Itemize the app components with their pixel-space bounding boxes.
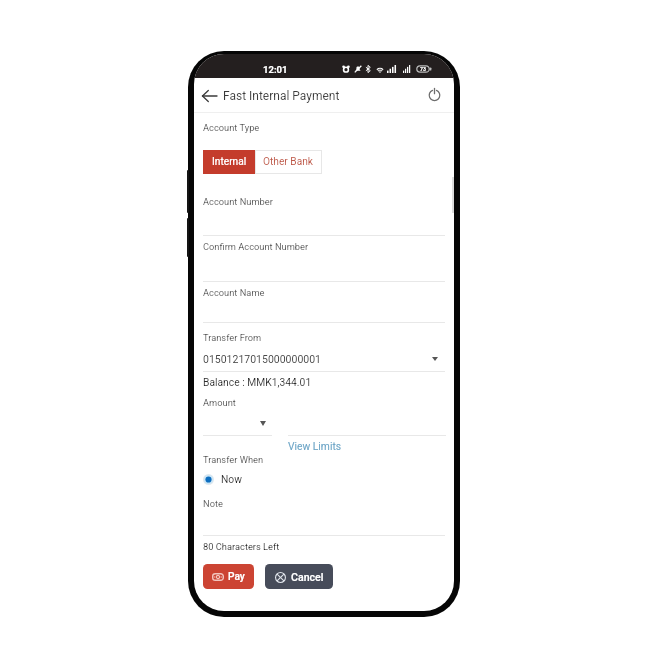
- button[interactable]: Cancel: [265, 564, 333, 589]
- staticText: Now: [221, 473, 242, 485]
- staticText: Account Name: [203, 287, 265, 298]
- button[interactable]: Back: [199, 86, 219, 106]
- staticText: 12:01: [263, 64, 288, 75]
- staticText: Pay: [228, 571, 245, 583]
- staticText: Transfer When: [203, 454, 264, 465]
- staticText: Account Type: [203, 122, 260, 133]
- staticText: Balance : MMK1,344.01: [203, 376, 312, 388]
- button[interactable]: Logout: [424, 84, 444, 104]
- staticText: 73: [420, 66, 426, 72]
- staticText: View Limits: [288, 440, 342, 452]
- staticText: Internal: [212, 156, 247, 168]
- button[interactable]: Now: [203, 473, 242, 485]
- staticText: Account Number: [203, 196, 273, 207]
- staticText: 80 Characters Left: [203, 541, 280, 552]
- staticText: Confirm Account Number: [203, 241, 309, 252]
- staticText: 01501217015000000001: [203, 353, 322, 365]
- button[interactable]: Pay: [203, 564, 254, 589]
- button[interactable]: Other Bank: [255, 150, 322, 174]
- button[interactable]: View Limits: [288, 440, 342, 452]
- staticText: Fast Internal Payment: [223, 89, 340, 103]
- staticText: Cancel: [291, 571, 324, 583]
- staticText: Note: [203, 498, 223, 509]
- staticText: Transfer From: [203, 332, 262, 343]
- staticText: Other Bank: [263, 156, 314, 168]
- button[interactable]: Internal: [203, 150, 255, 174]
- staticText: Amount: [203, 397, 236, 408]
